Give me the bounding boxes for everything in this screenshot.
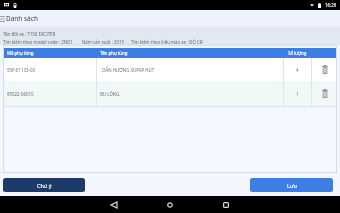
button[interactable]: Back: [105, 196, 122, 213]
button[interactable]: Delete item: [312, 58, 337, 81]
staticText: 95022-06010: [7, 91, 34, 97]
staticText: Danh sách: [6, 14, 38, 23]
button[interactable]: 95022-06010: [3, 81, 337, 106]
staticText: 16:29: [325, 2, 337, 8]
button[interactable]: Chú ý: [3, 178, 85, 192]
button[interactable]: Delete item: [312, 81, 337, 106]
staticText: . DẪN HƯỚNG XUPAP HÚT: [100, 67, 155, 73]
staticText: BU LÔNG: [100, 91, 120, 97]
staticText: Chú ý: [37, 182, 52, 189]
staticText: 55P-E1133-00: [7, 67, 36, 73]
staticText: Tìm kiếm theo model code : 2ND1: [3, 39, 73, 45]
button[interactable]: Lưu: [250, 178, 333, 192]
button[interactable]: Recent apps: [217, 196, 234, 213]
staticText: Mã phụ tùng: [7, 50, 34, 56]
staticText: Lưu: [287, 182, 297, 189]
staticText: Tên phụ tùng: [100, 50, 128, 56]
staticText: Tên đời xe : T150 EXCITER: [3, 31, 56, 37]
staticText: 4: [296, 67, 299, 73]
button[interactable]: 55P-E1133-00: [3, 58, 337, 81]
staticText: Tìm kiếm theo kiểu màu xe : ĐỎ CĐ: [131, 39, 203, 45]
staticText: Năm sản xuất : 2015: [82, 39, 125, 45]
button[interactable]: Home: [161, 196, 178, 213]
staticText: 1: [296, 91, 299, 97]
button[interactable]: Open navigation menu: [0, 10, 6, 27]
staticText: Số lượng: [288, 50, 307, 56]
